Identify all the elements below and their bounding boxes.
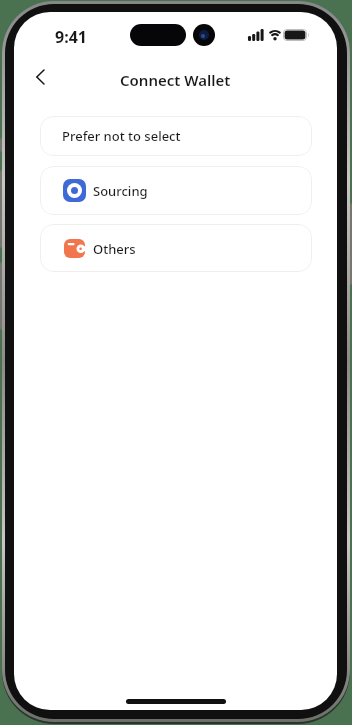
button[interactable]: Others [40,224,312,272]
staticText: 9:41 [55,26,87,48]
staticText: Connect Wallet [120,70,231,90]
button[interactable] [25,62,55,92]
staticText: Prefer not to select [62,127,181,145]
button[interactable]: Sourcing [40,166,312,215]
button[interactable]: Prefer not to select [40,116,312,156]
staticText: Sourcing [93,182,148,200]
staticText: Others [93,240,136,258]
